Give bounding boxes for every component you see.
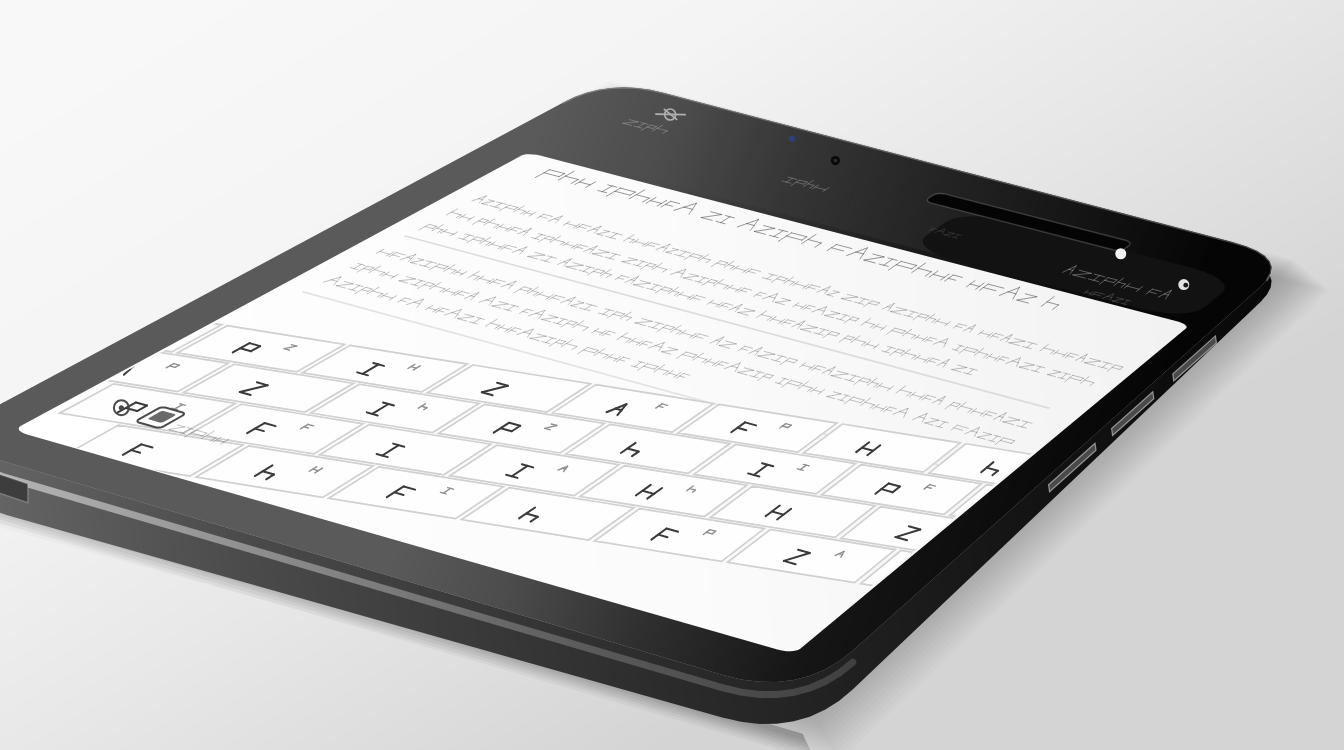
button[interactable]: Key ${KEY_NAMES[(r * KB_COLS + c) % KEY_… [435, 360, 582, 416]
button[interactable]: Key ${KEY_NAMES[(r * KB_COLS + c) % KEY_… [79, 419, 233, 476]
button[interactable]: Key ${KEY_NAMES[(r * KB_COLS + c) % KEY_… [205, 440, 364, 502]
button[interactable]: Attach image [123, 402, 197, 435]
button[interactable]: Key ${KEY_NAMES[(r * KB_COLS + c) % KEY_… [685, 399, 830, 456]
button[interactable]: Key ${KEY_NAMES[(r * KB_COLS + c) % KEY_… [935, 438, 1026, 482]
button[interactable]: Key ${KEY_NAMES[(r * KB_COLS + c) % KEY_… [457, 440, 610, 500]
button[interactable]: Note body [289, 164, 1162, 486]
button[interactable]: Key ${KEY_NAMES[(r * KB_COLS + c) % KEY_… [867, 544, 914, 578]
button[interactable]: Key ${KEY_NAMES[(r * KB_COLS + c) % KEY_… [810, 419, 953, 477]
button[interactable]: Key ${KEY_NAMES[(r * KB_COLS + c) % KEY_… [602, 503, 757, 566]
button[interactable]: Key ${KEY_NAMES[(r * KB_COLS + c) % KEY_… [587, 460, 739, 521]
button[interactable]: Key ${KEY_NAMES[(r * KB_COLS + c) % KEY_… [198, 399, 354, 458]
button[interactable]: Key ${KEY_NAMES[(r * KB_COLS + c) % KEY_… [319, 379, 471, 437]
button[interactable]: Key ${KEY_NAMES[(r * KB_COLS + c) % KEY_… [192, 359, 345, 416]
button[interactable]: Key ${KEY_NAMES[(r * KB_COLS + c) % KEY_… [847, 501, 948, 549]
button[interactable]: Key ${KEY_NAMES[(r * KB_COLS + c) % KEY_… [112, 352, 219, 395]
button[interactable]: Share [150, 419, 246, 456]
button[interactable]: Formatting [79, 389, 163, 424]
button[interactable]: Key ${KEY_NAMES[(r * KB_COLS + c) % KEY_… [956, 479, 995, 510]
button[interactable]: Key ${KEY_NAMES[(r * KB_COLS + c) % KEY_… [573, 419, 722, 478]
button[interactable]: Key ${KEY_NAMES[(r * KB_COLS + c) % KEY_… [310, 340, 459, 396]
button[interactable]: Key ${KEY_NAMES[(r * KB_COLS + c) % KEY_… [68, 378, 225, 437]
button[interactable]: Key ${KEY_NAMES[(r * KB_COLS + c) % KEY_… [328, 419, 483, 479]
button[interactable]: Key ${KEY_NAMES[(r * KB_COLS + c) % KEY_… [828, 459, 974, 519]
button[interactable]: Key ${KEY_NAMES[(r * KB_COLS + c) % KEY_… [446, 399, 596, 457]
button[interactable]: Key ${KEY_NAMES[(r * KB_COLS + c) % KEY_… [560, 379, 706, 436]
button[interactable]: Key ${KEY_NAMES[(r * KB_COLS + c) % KEY_… [701, 439, 848, 498]
button[interactable]: Key ${KEY_NAMES[(r * KB_COLS + c) % KEY_… [185, 321, 335, 376]
button[interactable]: Key ${KEY_NAMES[(r * KB_COLS + c) % KEY_… [469, 482, 625, 545]
button[interactable]: Key ${KEY_NAMES[(r * KB_COLS + c) % KEY_… [159, 328, 212, 356]
button[interactable]: Key ${KEY_NAMES[(r * KB_COLS + c) % KEY_… [717, 480, 867, 541]
button[interactable]: Key ${KEY_NAMES[(r * KB_COLS + c) % KEY_… [734, 524, 887, 588]
button[interactable]: Key ${KEY_NAMES[(r * KB_COLS + c) % KEY_… [337, 461, 495, 523]
